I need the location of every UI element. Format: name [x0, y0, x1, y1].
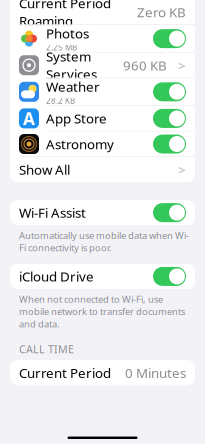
button[interactable]: Astronomy — [10, 131, 195, 156]
button[interactable]: A — [10, 106, 195, 131]
staticText: 28.2 KB — [46, 95, 75, 106]
staticText: Show All — [19, 161, 70, 178]
staticText: Weather — [46, 78, 100, 95]
staticText: CALL TIME — [19, 342, 74, 356]
staticText: System Services — [46, 47, 97, 83]
button[interactable]: Show All — [10, 157, 195, 182]
staticText: App Store — [46, 110, 107, 127]
staticText: 0 Minutes — [125, 364, 186, 382]
button[interactable]: System Services — [10, 53, 195, 78]
button[interactable]: iCloud Drive — [10, 264, 195, 289]
staticText: Current Period — [19, 364, 111, 382]
staticText: iCloud Drive — [19, 268, 94, 285]
button[interactable]: Current Period — [10, 360, 195, 385]
staticText: Wi-Fi Assist — [19, 204, 86, 221]
button[interactable]: Wi-Fi Assist — [10, 200, 195, 225]
staticText: > — [178, 161, 186, 178]
staticText: 960 KB — [123, 56, 167, 74]
button[interactable]: Weather — [10, 78, 195, 105]
staticText: > — [178, 56, 186, 74]
button[interactable]: Photos — [10, 25, 195, 52]
staticText: When not connected to Wi-Fi, use mobile … — [19, 293, 185, 330]
staticText: Current Period Roaming — [19, 0, 111, 30]
button[interactable]: Current Period Roaming — [10, 0, 195, 24]
staticText: Zero KB — [137, 3, 186, 21]
staticText: Automatically use mobile data when Wi-Fi… — [19, 229, 189, 254]
staticText: 2.25 MB — [46, 42, 77, 53]
staticText: Photos — [46, 24, 89, 42]
staticText: A — [23, 107, 35, 130]
staticText: Astronomy — [46, 135, 114, 153]
